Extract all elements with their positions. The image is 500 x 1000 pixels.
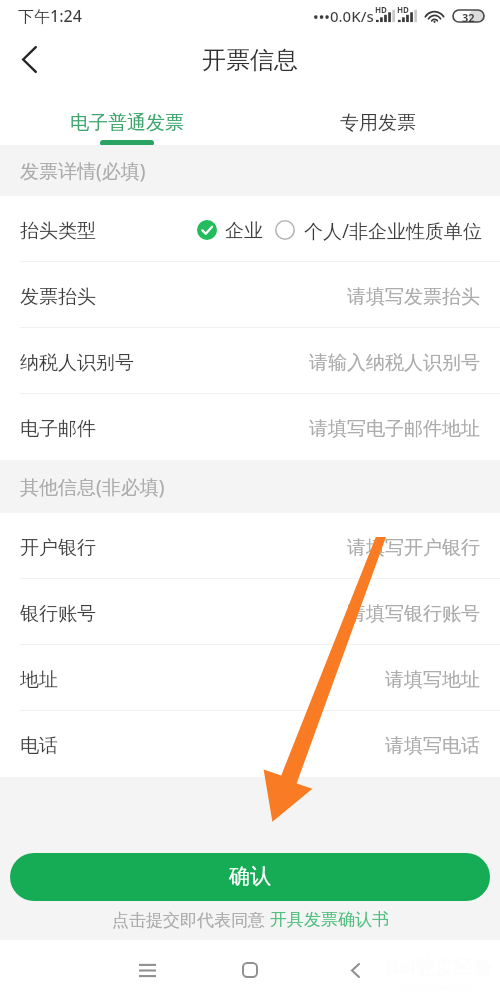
button[interactable]: Back (6, 40, 52, 86)
staticText: 开票信息 (202, 45, 298, 75)
staticText: 发票详情(必填) (20, 158, 146, 184)
button[interactable]: 点击提交即代表同意 (112, 908, 389, 931)
staticText: 纳税人识别号 (20, 351, 134, 375)
staticText: 请填写开户银行 (347, 536, 480, 560)
staticText: 请填写地址 (385, 668, 480, 692)
staticText: HD (397, 4, 409, 15)
button[interactable]: 银行账号 (0, 579, 500, 645)
button[interactable]: 发票抬头 (0, 262, 500, 328)
staticText: 抬头类型 (20, 219, 96, 243)
button[interactable]: 电子邮件 (0, 394, 500, 460)
staticText: 请填写电话 (385, 734, 480, 758)
button[interactable]: 开户银行 (0, 513, 500, 579)
staticText: •••0.0K/s (313, 6, 374, 26)
staticText: 确认 (229, 863, 271, 889)
staticText: HD (375, 4, 387, 15)
staticText: 请填写银行账号 (347, 602, 480, 626)
staticText: 电子普通发票 (70, 111, 184, 135)
staticText: 电子邮件 (20, 417, 96, 441)
button[interactable]: 地址 (0, 645, 500, 711)
staticText: 其他信息(非必填) (20, 474, 165, 500)
staticText: 下午1:24 (18, 5, 82, 27)
button[interactable]: 企业 (197, 219, 263, 243)
button[interactable]: 确认 (10, 853, 490, 901)
staticText: 地址 (20, 668, 58, 692)
button[interactable]: Home (226, 946, 274, 994)
staticText: 发票抬头 (20, 285, 96, 309)
staticText: 专用发票 (340, 111, 416, 135)
staticText: 银行账号 (20, 602, 96, 626)
button[interactable]: 电话 (0, 711, 500, 777)
staticText: 请填写发票抬头 (347, 285, 480, 309)
staticText: 请填写电子邮件地址 (309, 417, 480, 441)
staticText: 企业 (225, 219, 263, 243)
staticText: 开户银行 (20, 536, 96, 560)
button[interactable]: Recents (123, 946, 171, 994)
staticText: 请输入纳税人识别号 (309, 351, 480, 375)
button[interactable]: 电子普通发票 (0, 94, 250, 145)
button[interactable]: 专用发票 (250, 94, 500, 145)
staticText: 点击提交即代表同意 (112, 908, 270, 931)
staticText: 开具发票确认书 (270, 909, 389, 930)
staticText: 个人/非企业性质单位 (304, 218, 483, 244)
button[interactable]: 纳税人识别号 (0, 328, 500, 394)
button[interactable]: 个人/非企业性质单位 (275, 218, 483, 244)
button[interactable]: Back (331, 946, 379, 994)
staticText: 电话 (20, 734, 58, 758)
staticText: 32 (462, 10, 475, 22)
